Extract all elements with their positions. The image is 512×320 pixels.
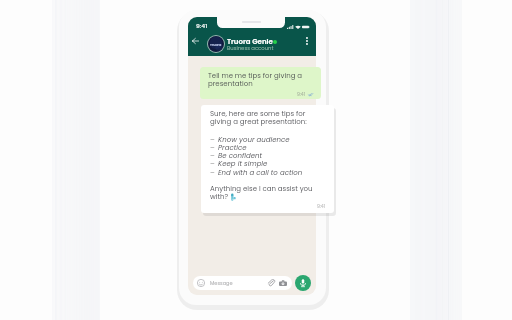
button[interactable]: Sure, here are some tips for giving a gr… xyxy=(201,105,334,213)
staticText: 9:41 xyxy=(196,22,208,30)
staticText: Message xyxy=(210,280,233,287)
staticText: 9:41 xyxy=(297,91,306,97)
staticText: Anything else I can assist you with? xyxy=(210,184,313,201)
staticText: 9:41 xyxy=(317,203,326,209)
staticText: Know your audience xyxy=(218,135,290,145)
staticText: End with a call to action xyxy=(218,168,303,178)
button[interactable]: Back xyxy=(189,34,202,47)
button[interactable]: Emoji xyxy=(193,276,292,290)
staticText: Practice xyxy=(218,143,247,153)
staticText: – xyxy=(210,151,215,161)
button[interactable]: Voice message xyxy=(295,275,311,291)
staticText: – xyxy=(210,135,215,145)
button[interactable]: Attach xyxy=(267,279,275,286)
staticText: Tell me me tips for giving a presentatio… xyxy=(208,71,302,88)
staticText: Truora Genie xyxy=(227,37,273,47)
button[interactable]: Camera xyxy=(279,280,287,287)
staticText: Keep it simple xyxy=(218,159,268,169)
staticText: – xyxy=(210,159,215,169)
button[interactable]: More options xyxy=(300,34,313,47)
staticText: Sure, here are some tips for giving a gr… xyxy=(210,109,307,126)
staticText: Be confident xyxy=(218,151,263,161)
staticText: Truora xyxy=(210,42,222,47)
other: Emoji xyxy=(197,279,205,287)
staticText: – xyxy=(210,143,215,153)
staticText: – xyxy=(210,168,215,178)
staticText: Business account xyxy=(227,44,274,51)
button[interactable]: Tell me me tips for giving a presentatio… xyxy=(200,67,321,99)
